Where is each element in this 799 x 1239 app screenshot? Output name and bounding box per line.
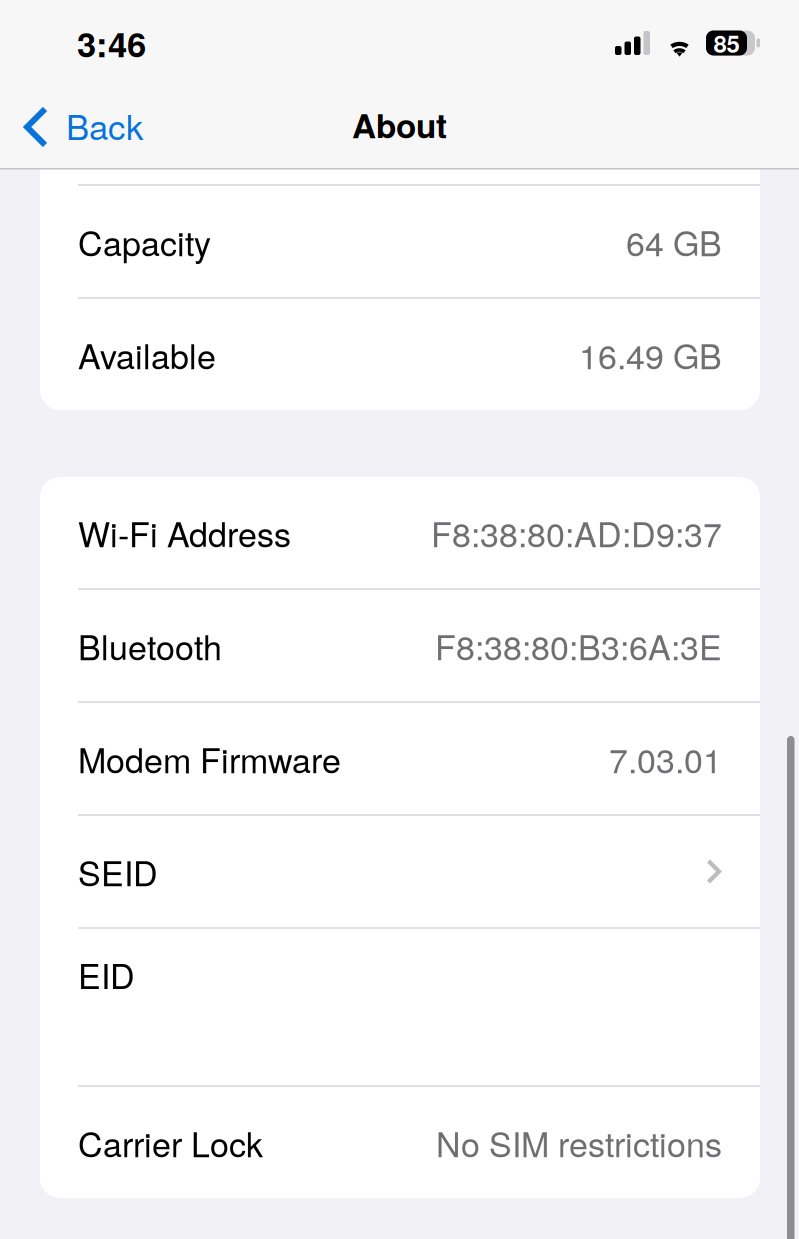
- staticText: Modem Firmware: [78, 734, 341, 783]
- button[interactable]: Capacity: [40, 186, 760, 297]
- staticText: No SIM restrictions: [436, 1118, 722, 1167]
- staticText: 85: [713, 26, 739, 60]
- staticText: 16.49 GB: [579, 330, 722, 379]
- staticText: Back: [66, 100, 143, 150]
- button[interactable]: SEID: [40, 816, 760, 927]
- button[interactable]: Bluetooth: [40, 590, 760, 701]
- staticText: Available: [78, 330, 216, 379]
- staticText: F8:38:80:B3:6A:3E: [435, 621, 722, 670]
- staticText: Wi-Fi Address: [78, 508, 291, 557]
- staticText: Bluetooth: [78, 621, 222, 670]
- staticText: 7.03.01: [609, 734, 722, 783]
- staticText: EID: [78, 950, 135, 999]
- button[interactable]: Carrier Lock: [40, 1087, 760, 1198]
- staticText: Capacity: [78, 217, 211, 266]
- button[interactable]: EID: [40, 929, 760, 1085]
- staticText: About: [352, 101, 447, 148]
- staticText: 3:46: [77, 18, 146, 68]
- staticText: F8:38:80:AD:D9:37: [431, 508, 722, 557]
- staticText: 64 GB: [626, 217, 722, 266]
- button[interactable]: Available: [40, 299, 760, 410]
- button[interactable]: Back: [0, 88, 161, 166]
- staticText: Carrier Lock: [78, 1118, 263, 1167]
- staticText: SEID: [78, 847, 158, 896]
- button[interactable]: Modem Firmware: [40, 703, 760, 814]
- button[interactable]: Wi-Fi Address: [40, 477, 760, 588]
